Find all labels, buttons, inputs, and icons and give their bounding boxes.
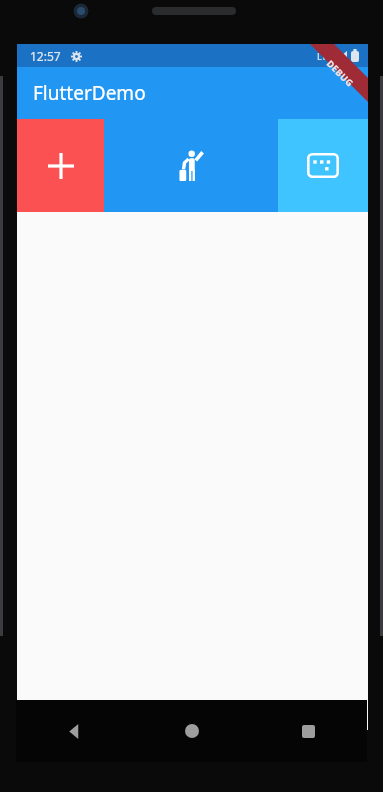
button[interactable]: Travel [104,119,278,212]
button[interactable]: Home [133,700,250,762]
staticText: LTE [317,50,332,62]
button[interactable]: Back [16,700,133,762]
staticText: FlutterDemo [33,80,146,106]
button[interactable]: Add [17,119,104,212]
staticText: DEBUG [325,57,356,89]
button[interactable]: Keyboard [278,119,368,212]
button[interactable]: Recents [250,700,367,762]
staticText: 12:57 [30,48,61,64]
